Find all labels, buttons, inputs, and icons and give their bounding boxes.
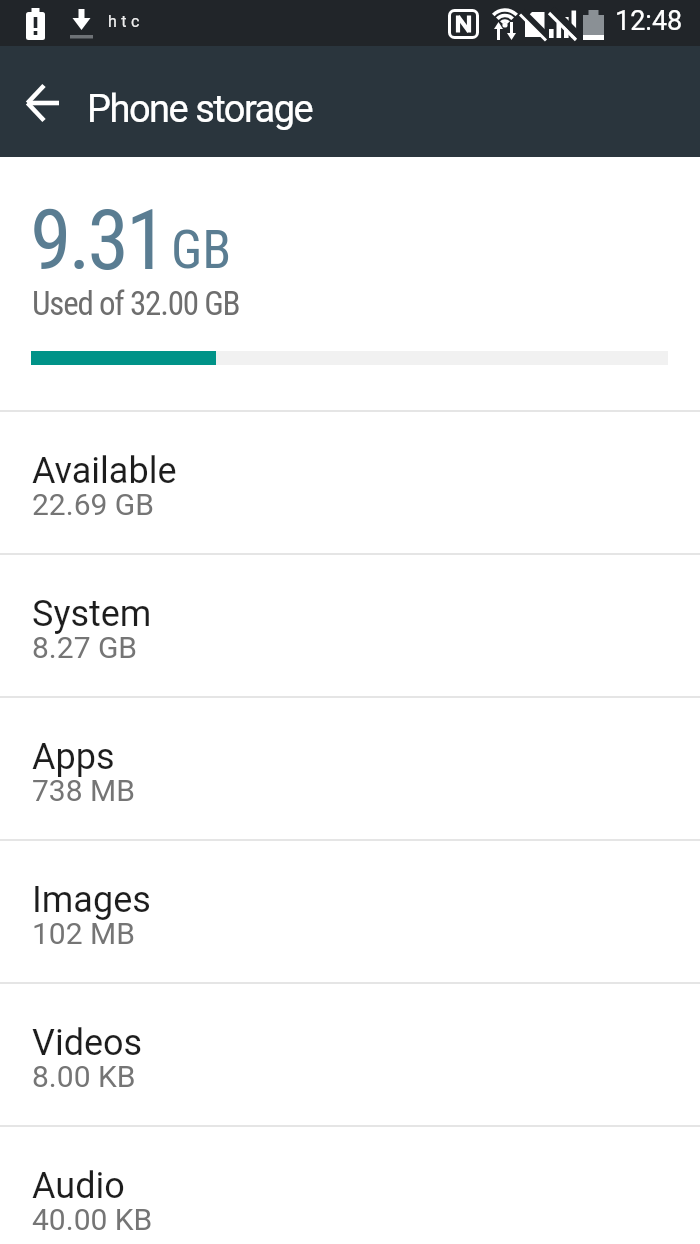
staticText: Images	[32, 879, 151, 921]
staticText: Videos	[32, 1022, 143, 1064]
staticText: 40.00 KB	[32, 1202, 153, 1237]
button[interactable]: Available	[0, 412, 700, 553]
staticText: 8.00 KB	[32, 1059, 136, 1094]
staticText: Available	[32, 450, 177, 492]
staticText: Used of 32.00 GB	[32, 284, 240, 323]
staticText: 9.31	[30, 191, 165, 289]
staticText: Audio	[32, 1165, 125, 1207]
staticText: Apps	[32, 736, 115, 778]
staticText: 102 MB	[32, 916, 135, 951]
button[interactable]: Audio	[0, 1127, 700, 1244]
staticText: 12:48	[615, 5, 683, 37]
staticText: Phone storage	[87, 87, 313, 132]
staticText: 738 MB	[32, 773, 135, 808]
staticText: GB	[171, 219, 232, 281]
staticText: System	[32, 593, 152, 635]
button[interactable]: Videos	[0, 984, 700, 1125]
button[interactable]: Apps	[0, 698, 700, 839]
staticText: htc	[108, 12, 144, 31]
button[interactable]: System	[0, 555, 700, 696]
button[interactable]	[8, 83, 78, 123]
staticText: 8.27 GB	[32, 630, 138, 665]
button[interactable]: Images	[0, 841, 700, 982]
staticText: 22.69 GB	[32, 487, 154, 522]
